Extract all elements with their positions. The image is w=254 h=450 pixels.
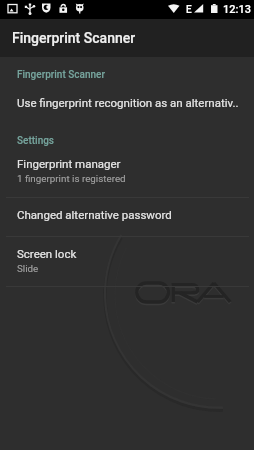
button[interactable]: Fingerprint Scanner (0, 19, 254, 57)
staticText: Screen lock (17, 247, 77, 260)
button[interactable]: Screen lock (0, 247, 254, 274)
staticText: Fingerprint Scanner (12, 30, 136, 46)
staticText: Fingerprint Scanner (17, 69, 105, 81)
staticText: 1 fingerprint is registered (17, 173, 126, 184)
button[interactable]: Use fingerprint recognition as an altern… (0, 87, 254, 113)
button[interactable]: Fingerprint manager (0, 157, 254, 184)
staticText: Settings (17, 135, 55, 147)
staticText: E (186, 4, 192, 16)
staticText: Slide (17, 263, 39, 274)
button[interactable]: Changed alternative password (0, 208, 254, 221)
staticText: Use fingerprint recognition as an altern… (17, 96, 239, 109)
staticText: Fingerprint manager (17, 157, 121, 170)
staticText: 12:13 (223, 3, 251, 16)
staticText: Changed alternative password (17, 208, 172, 221)
